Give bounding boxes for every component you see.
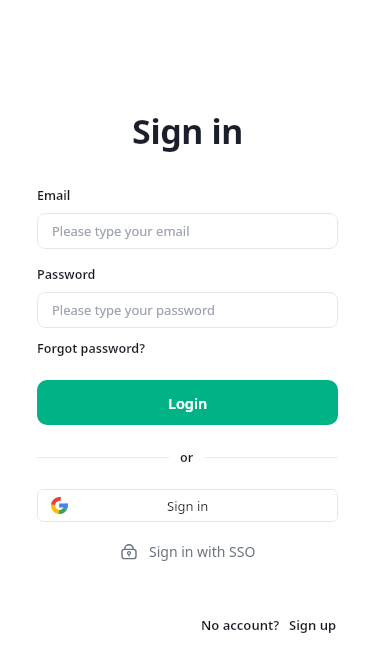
staticText: Email: [37, 187, 71, 204]
button[interactable]: Sign in with SSO: [113, 538, 262, 564]
staticText: Sign in: [0, 108, 375, 154]
staticText: or: [180, 449, 194, 466]
staticText: Forgot password?: [37, 340, 145, 357]
button[interactable]: Please type your password: [37, 292, 338, 328]
staticText: Sign up: [289, 616, 337, 634]
button[interactable]: Forgot password?: [37, 338, 145, 359]
button[interactable]: Sign up: [288, 614, 338, 636]
other: Sign in with SSO: [119, 541, 139, 561]
staticText: Sign in: [167, 497, 209, 515]
staticText: No account?: [201, 616, 280, 634]
button[interactable]: Please type your email: [37, 213, 338, 249]
other: Google: [51, 497, 68, 514]
staticText: Password: [37, 266, 96, 283]
staticText: Please type your email: [52, 222, 190, 240]
staticText: Sign in with SSO: [149, 542, 256, 561]
staticText: Login: [168, 393, 208, 413]
staticText: Please type your password: [52, 301, 216, 319]
button[interactable]: Login: [37, 380, 338, 425]
button[interactable]: Sign in: [37, 489, 338, 522]
